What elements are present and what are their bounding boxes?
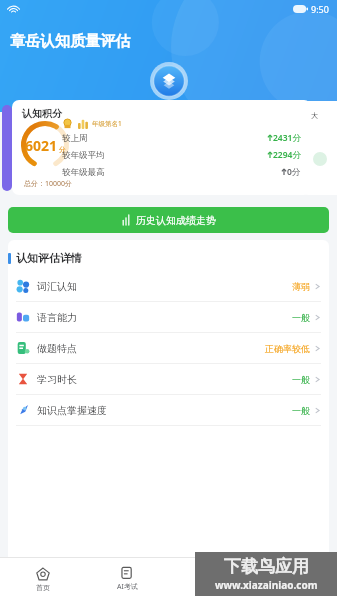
staticText: 分 (59, 145, 66, 154)
staticText: 较年级最高 (62, 167, 105, 178)
staticText: 我的 (288, 583, 302, 592)
staticText: 薄弱 (292, 281, 310, 292)
staticText: 较年级平均 (62, 150, 105, 161)
staticText: 2431分 (273, 132, 301, 144)
button[interactable]: 大 (301, 101, 337, 195)
staticText: 章岳认知质量评估 (10, 32, 130, 51)
staticText: 总分：10000分 (24, 179, 73, 189)
staticText: 6021 (25, 136, 58, 155)
button[interactable]: 首页 (0, 558, 85, 600)
staticText: 正确率较低 (265, 343, 310, 354)
staticText: 词汇认知 (37, 280, 77, 293)
staticText: 一般 (292, 405, 310, 416)
staticText: 知识点掌握速度 (37, 404, 107, 417)
button[interactable]: 知识点掌握速度 (8, 395, 329, 425)
staticText: 大 (311, 111, 318, 120)
staticText: 下载鸟应用 (224, 556, 309, 577)
button[interactable]: AI考试 (85, 558, 169, 600)
button[interactable]: 我的 (253, 558, 337, 600)
staticText: 一般 (292, 374, 310, 385)
button[interactable]: 学习时长 (8, 364, 329, 394)
button[interactable]: 做题特点 (8, 333, 329, 363)
staticText: 较上周 (62, 133, 88, 144)
staticText: 做题特点 (37, 342, 77, 355)
staticText: 首页 (36, 583, 50, 592)
button[interactable]: 语言能力 (8, 302, 329, 332)
button[interactable]: AI考辅 (169, 558, 253, 600)
staticText: 认知积分 (22, 107, 62, 120)
button[interactable]: 词汇认知 (8, 271, 329, 301)
staticText: 历史认知成绩走势 (136, 214, 216, 227)
staticText: 一般 (292, 312, 310, 323)
button[interactable]: 认知积分 (12, 100, 311, 195)
staticText: 认知评估详情 (16, 251, 82, 265)
staticText: 0分 (287, 166, 301, 178)
staticText: 年级第名1 (92, 119, 122, 128)
staticText: AI考辅 (201, 582, 222, 592)
button[interactable]: 历史认知成绩走势 (8, 207, 329, 233)
staticText: www.xiazainiao.com (215, 578, 318, 592)
staticText: 学习时长 (37, 373, 77, 386)
staticText: 语言能力 (37, 311, 77, 324)
staticText: 9:50 (311, 3, 329, 15)
staticText: 2294分 (273, 149, 301, 161)
staticText: AI考试 (117, 582, 138, 592)
